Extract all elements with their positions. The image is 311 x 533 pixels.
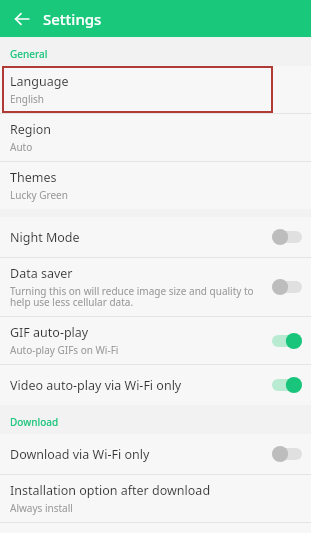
button[interactable] [272, 332, 302, 350]
staticText: Night Mode [10, 229, 80, 246]
staticText: Download via Wi-Fi only [10, 446, 150, 463]
staticText: Language [10, 73, 69, 90]
button[interactable]: Language [0, 66, 311, 113]
staticText: Settings [43, 9, 102, 29]
button[interactable]: Installation option after download [0, 475, 311, 522]
staticText: Installation option after download [10, 482, 211, 499]
button[interactable] [272, 445, 302, 463]
button[interactable]: Data saver [0, 258, 311, 316]
button[interactable] [272, 376, 302, 394]
button[interactable] [272, 278, 302, 296]
staticText: Auto [10, 140, 33, 154]
staticText: Region [10, 121, 52, 138]
staticText: Themes [10, 169, 57, 186]
button[interactable] [272, 228, 302, 246]
staticText: Download [10, 415, 59, 429]
staticText: Video auto-play via Wi-Fi only [10, 377, 182, 394]
staticText: English [10, 92, 45, 106]
staticText: Data saver [10, 265, 73, 282]
staticText: Auto-play GIFs on Wi-Fi [10, 343, 119, 357]
button[interactable]: Video auto-play via Wi-Fi only [0, 365, 311, 405]
staticText: Turning this on will reduce image size a… [10, 284, 266, 309]
staticText: GIF auto-play [10, 324, 89, 341]
button[interactable]: Night Mode [0, 217, 311, 257]
staticText: General [10, 47, 48, 61]
button[interactable]: GIF auto-play [0, 317, 311, 364]
staticText: Lucky Green [10, 188, 68, 202]
button[interactable]: Download via Wi-Fi only [0, 434, 311, 474]
button[interactable]: Back [9, 6, 35, 32]
button[interactable]: Themes [0, 162, 311, 209]
button[interactable]: Region [0, 114, 311, 161]
staticText: Always install [10, 501, 73, 515]
